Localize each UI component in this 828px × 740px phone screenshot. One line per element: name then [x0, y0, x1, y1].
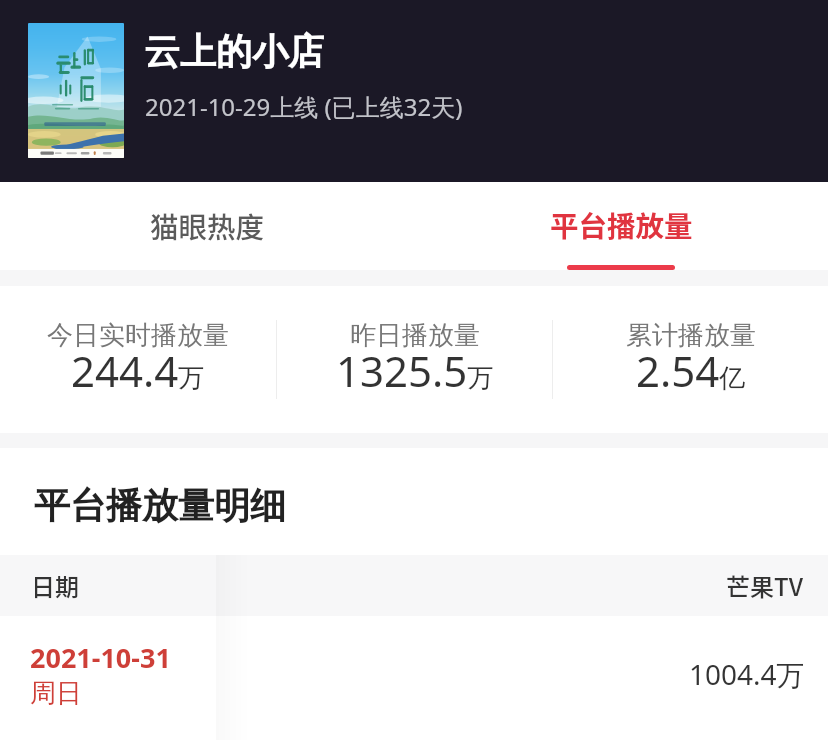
staticText: 猫眼热度: [150, 205, 265, 246]
staticText: 今日实时播放量: [47, 319, 229, 352]
staticText: 1325.5万: [336, 342, 494, 399]
staticText: 2.54亿: [636, 342, 746, 399]
staticText: 244.4万: [71, 342, 205, 399]
staticText: 2021-10-29上线 (已上线32天): [145, 90, 463, 123]
button[interactable]: 2021-10-31: [0, 616, 828, 736]
staticText: 日期: [31, 568, 79, 603]
staticText: 平台播放量明细: [34, 483, 286, 528]
button[interactable]: 猫眼热度: [0, 182, 414, 270]
staticText: 2021-10-31: [30, 639, 171, 676]
staticText: 芒果TV: [726, 568, 803, 603]
staticText: 累计播放量: [626, 319, 756, 352]
staticText: 云上的小店: [144, 29, 324, 74]
staticText: 平台播放量: [550, 204, 693, 245]
staticText: 1004.4万: [689, 655, 805, 693]
button[interactable]: 平台播放量: [414, 182, 828, 270]
staticText: 昨日播放量: [350, 319, 480, 352]
staticText: 周日: [30, 677, 82, 710]
